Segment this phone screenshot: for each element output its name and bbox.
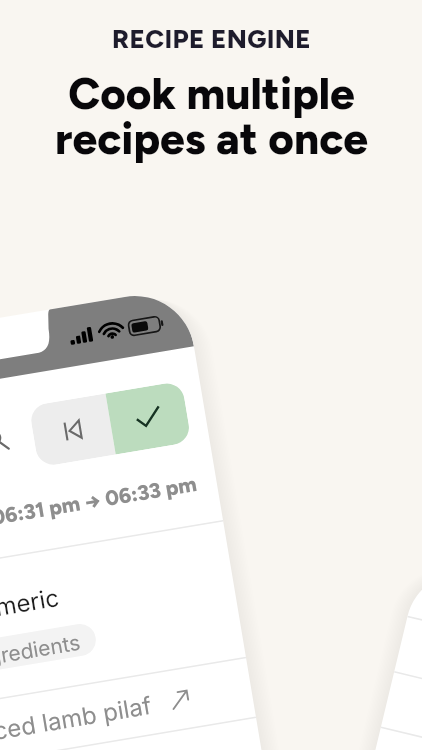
staticText: Cook multiple recipes at once bbox=[55, 67, 368, 165]
staticText: RECIPE ENGINE bbox=[112, 23, 311, 54]
